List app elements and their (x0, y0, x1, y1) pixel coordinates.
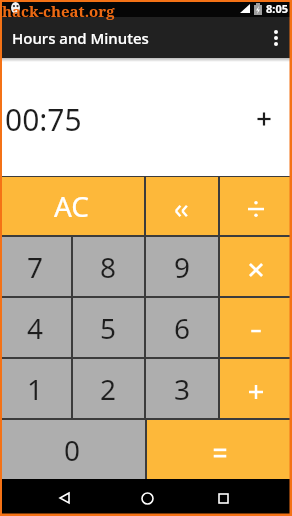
button[interactable]: 9 (146, 237, 218, 296)
button[interactable]: AC (0, 177, 144, 235)
button[interactable]: 6 (146, 298, 218, 357)
button[interactable] (147, 420, 292, 479)
button[interactable]: 4 (0, 298, 71, 357)
button[interactable] (220, 298, 292, 357)
button[interactable]: 0 (0, 420, 145, 479)
staticText: 9 (174, 248, 191, 286)
staticText: 2 (100, 370, 117, 408)
button[interactable]: 8 (73, 237, 144, 296)
staticText: 0 (64, 431, 81, 469)
staticText: AC (54, 187, 90, 225)
button[interactable]: 2 (73, 359, 144, 418)
staticText: 4 (27, 309, 44, 347)
staticText: 6 (174, 309, 191, 347)
staticText: 8 (100, 248, 117, 286)
button[interactable]: 1 (0, 359, 71, 418)
button[interactable] (146, 177, 218, 235)
button[interactable]: 3 (146, 359, 218, 418)
button[interactable] (129, 480, 165, 516)
staticText: 3 (174, 370, 191, 408)
staticText: 8:05 (266, 1, 288, 16)
staticText: hack-cheat.org (2, 1, 115, 21)
button[interactable] (46, 480, 82, 516)
staticText: Hours and Minutes (12, 28, 149, 48)
staticText: 5 (100, 309, 117, 347)
button[interactable] (260, 22, 292, 54)
button[interactable] (220, 177, 292, 235)
staticText: 00:75 (5, 99, 82, 140)
staticText: 1 (27, 370, 44, 408)
button[interactable]: 7 (0, 237, 71, 296)
button[interactable] (220, 237, 292, 296)
button[interactable]: 5 (73, 298, 144, 357)
button[interactable] (205, 480, 241, 516)
button[interactable] (220, 359, 292, 418)
staticText: 7 (27, 248, 44, 286)
